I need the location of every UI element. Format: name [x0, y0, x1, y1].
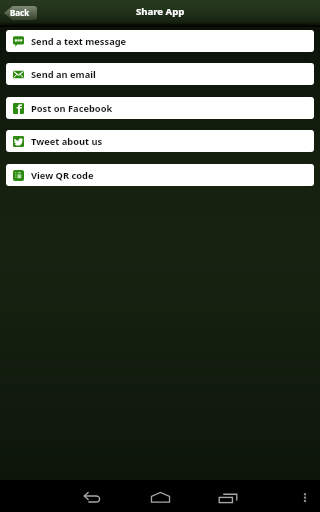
staticText: Send a text message [31, 35, 127, 48]
staticText: Share App [136, 5, 185, 18]
staticText: Tweet about us [31, 135, 103, 148]
button[interactable]: Send an email [6, 63, 314, 85]
button[interactable]: More options [295, 487, 315, 507]
button[interactable]: View QR code [6, 164, 314, 186]
button[interactable]: Send a text message [6, 30, 314, 52]
button[interactable]: Recent apps [214, 484, 242, 512]
button[interactable]: Back [78, 484, 106, 512]
button[interactable]: Post on Facebook [6, 97, 314, 119]
staticText: Post on Facebook [31, 102, 113, 115]
button[interactable]: Back [4, 6, 37, 20]
button[interactable]: Tweet about us [6, 130, 314, 152]
staticText: View QR code [31, 169, 94, 182]
staticText: Back [10, 7, 30, 18]
button[interactable]: Home [146, 483, 174, 511]
staticText: Send an email [31, 68, 96, 81]
